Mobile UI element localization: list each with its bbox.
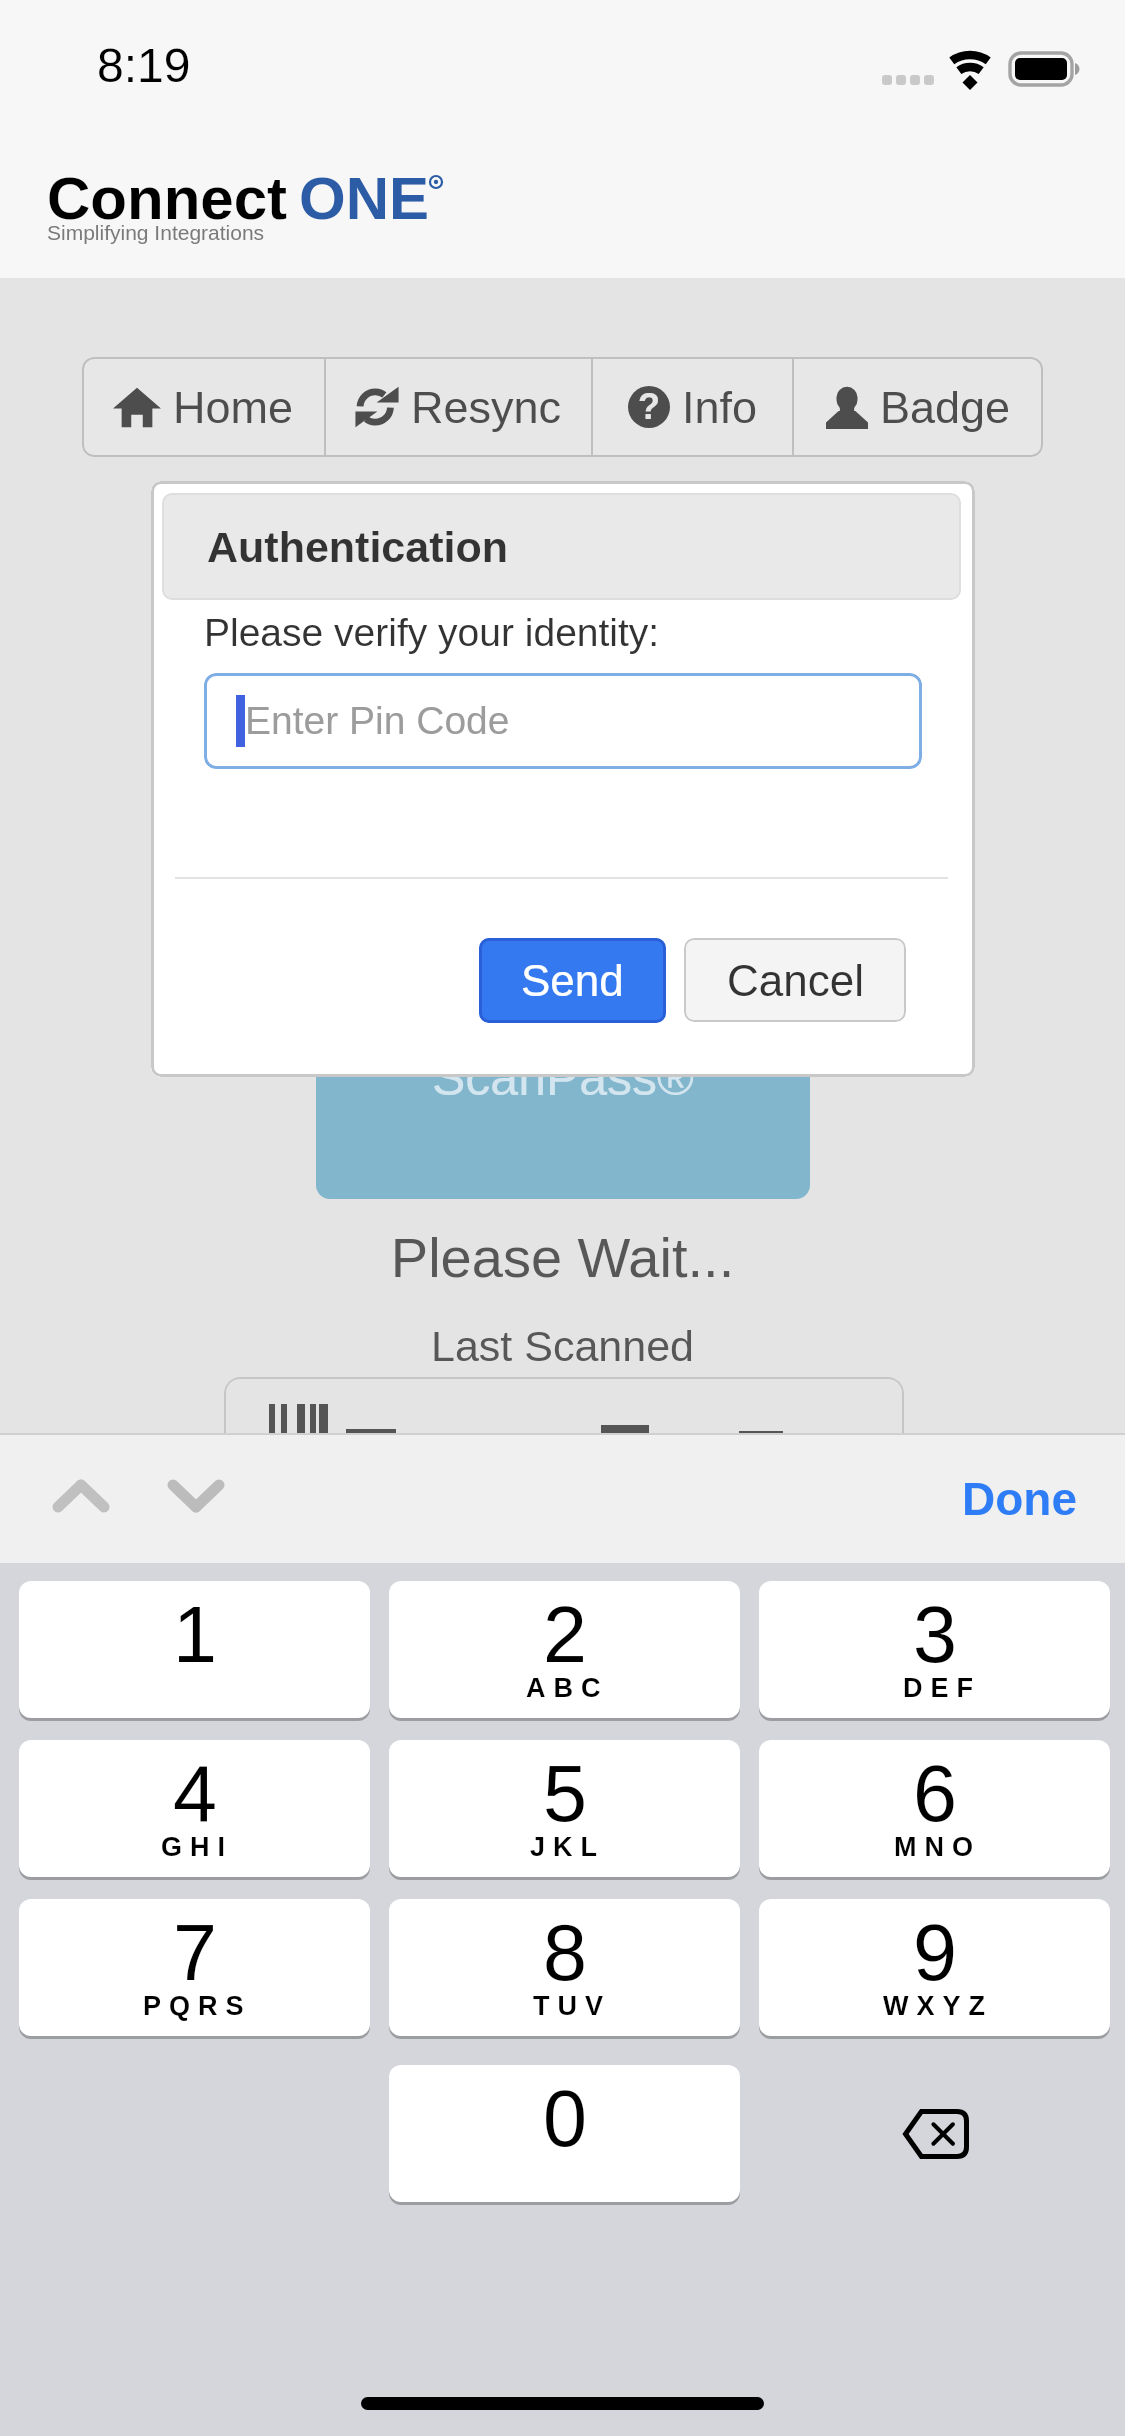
staticText: Last Scanned xyxy=(0,1322,1125,1370)
staticText: Send xyxy=(521,956,624,1005)
staticText: JKL xyxy=(530,1832,606,1862)
button[interactable]: Resync xyxy=(326,357,591,457)
staticText: TUV xyxy=(529,1991,607,2021)
staticText: Resync xyxy=(411,382,562,432)
staticText: ScanPass® xyxy=(432,1050,694,1106)
button[interactable]: Cancel xyxy=(684,938,906,1022)
staticText: Connect xyxy=(47,165,287,232)
button[interactable]: Enter Pin Code xyxy=(204,673,922,769)
button[interactable]: ScanPass® xyxy=(316,1030,810,1199)
button[interactable]: 6 xyxy=(759,1740,1110,1877)
staticText: 7 xyxy=(173,1908,217,1996)
button[interactable]: Delete xyxy=(759,2065,1110,2202)
staticText: WXYZ xyxy=(883,1991,993,2021)
staticText: 2 xyxy=(543,1590,587,1678)
staticText: Enter Pin Code xyxy=(245,699,510,743)
staticText: 8:19 xyxy=(97,39,191,93)
staticText: PQRS xyxy=(143,1991,252,2021)
button[interactable]: 8 xyxy=(389,1899,740,2036)
staticText: MNO xyxy=(894,1832,981,1862)
button[interactable]: 7 xyxy=(19,1899,370,2036)
staticText: 6 xyxy=(913,1749,957,1837)
button[interactable]: Send xyxy=(479,938,666,1023)
button[interactable]: 2 xyxy=(389,1581,740,1718)
staticText: Please Wait... xyxy=(0,1226,1125,1289)
button[interactable]: Badge xyxy=(794,357,1043,457)
button[interactable]: 3 xyxy=(759,1581,1110,1718)
staticText: Cancel xyxy=(727,956,864,1005)
button[interactable]: Home xyxy=(82,357,324,457)
staticText: 5 xyxy=(543,1749,587,1837)
button[interactable]: Previous field xyxy=(26,1453,136,1543)
staticText: Done xyxy=(962,1473,1077,1524)
staticText: GHI xyxy=(161,1832,234,1862)
button[interactable]: 0 xyxy=(389,2065,740,2202)
button[interactable]: Done xyxy=(954,1459,1085,1538)
button[interactable]: 4 xyxy=(19,1740,370,1877)
staticText: DEF xyxy=(899,1673,977,1703)
staticText: Badge xyxy=(880,382,1011,432)
button[interactable]: 5 xyxy=(389,1740,740,1877)
staticText: ABC xyxy=(526,1673,609,1703)
button[interactable]: Next field xyxy=(141,1453,251,1543)
button[interactable]: 9 xyxy=(759,1899,1110,2036)
staticText: ONE xyxy=(299,165,430,232)
staticText: ? xyxy=(638,386,660,426)
staticText: Authentication xyxy=(207,523,508,571)
staticText: Home xyxy=(173,382,294,432)
staticText: Please verify your identity: xyxy=(204,611,660,655)
staticText: 0 xyxy=(543,2074,587,2162)
staticText: 9 xyxy=(913,1908,957,1996)
button[interactable]: ? xyxy=(593,357,792,457)
staticText: 8 xyxy=(543,1908,587,1996)
staticText: Info xyxy=(682,382,758,432)
staticText: 3 xyxy=(913,1590,957,1678)
button[interactable]: 1 xyxy=(19,1581,370,1718)
staticText: 4 xyxy=(173,1749,217,1837)
staticText: 1 xyxy=(173,1590,217,1678)
staticText: Simplifying Integrations xyxy=(47,221,265,244)
